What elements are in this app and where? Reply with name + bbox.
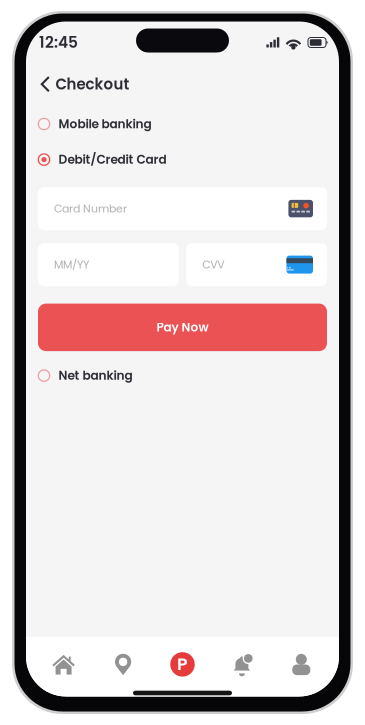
button[interactable]: Debit/Credit Card: [26, 148, 339, 172]
button[interactable]: Notifications: [212, 637, 272, 681]
staticText: Net banking: [58, 367, 132, 384]
staticText: Mobile banking: [58, 115, 151, 132]
button[interactable]: Home: [34, 637, 93, 681]
button[interactable]: Mobile banking: [26, 112, 339, 136]
staticText: Card Number: [54, 201, 127, 216]
staticText: 12:45: [39, 32, 78, 53]
button[interactable]: Back: [26, 69, 55, 99]
staticText: CVV: [202, 257, 224, 272]
staticText: P: [177, 652, 188, 677]
staticText: Checkout: [55, 74, 129, 95]
staticText: Pay Now: [156, 319, 208, 336]
staticText: MM/YY: [54, 257, 89, 272]
button[interactable]: Pay: [153, 637, 212, 681]
button[interactable]: Net banking: [26, 364, 339, 388]
button[interactable]: Locations: [93, 637, 153, 681]
staticText: Debit/Credit Card: [58, 151, 166, 168]
button[interactable]: Pay Now: [38, 304, 327, 351]
button[interactable]: Profile: [272, 637, 331, 681]
